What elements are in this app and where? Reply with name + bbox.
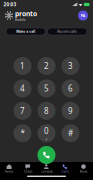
- staticText: #: [68, 128, 73, 139]
- button[interactable]: 6: [61, 79, 79, 97]
- staticText: 3: [68, 61, 73, 71]
- staticText: PA: [80, 13, 85, 18]
- staticText: 6: [68, 83, 73, 94]
- staticText: Contacts: [40, 169, 52, 173]
- staticText: 7: [20, 105, 25, 116]
- button[interactable]: 5: [37, 79, 55, 97]
- button[interactable]: *: [13, 124, 31, 142]
- button[interactable]: 9: [61, 102, 79, 120]
- button[interactable]: 7: [13, 102, 31, 120]
- button[interactable]: Contacts: [37, 163, 56, 174]
- staticText: *: [20, 128, 24, 139]
- staticText: 4: [20, 83, 25, 94]
- button[interactable]: Chats: [19, 163, 37, 174]
- button[interactable]: 3: [61, 57, 79, 75]
- button[interactable]: Make a call: [6, 28, 45, 35]
- staticText: 1: [20, 61, 25, 71]
- button[interactable]: #: [61, 124, 79, 142]
- staticText: Make a call: [16, 29, 35, 34]
- staticText: 8: [44, 105, 49, 116]
- button[interactable]: Home: [0, 163, 19, 174]
- button[interactable]: 4: [13, 79, 31, 97]
- staticText: Recent calls: [57, 29, 77, 34]
- staticText: 0: [44, 125, 49, 136]
- button[interactable]: More: [74, 163, 93, 174]
- staticText: pronto: [15, 9, 37, 18]
- staticText: 5: [44, 83, 49, 94]
- button[interactable]: Recent calls: [47, 28, 87, 35]
- staticText: 9: [68, 105, 73, 116]
- staticText: 2: [44, 61, 49, 71]
- staticText: +: [45, 136, 47, 141]
- button[interactable]: Call: [37, 146, 55, 164]
- button[interactable]: Profile: [78, 10, 88, 20]
- staticText: mobile: [15, 18, 26, 22]
- button[interactable]: Calls: [56, 163, 74, 174]
- staticText: 20:03: [3, 1, 16, 8]
- staticText: More: [80, 169, 88, 173]
- button[interactable]: 8: [37, 102, 55, 120]
- staticText: Calls: [62, 169, 69, 173]
- staticText: Home: [5, 169, 14, 173]
- staticText: Chats: [24, 169, 32, 173]
- button[interactable]: 0: [37, 124, 55, 142]
- button[interactable]: 1: [13, 57, 31, 75]
- button[interactable]: 2: [37, 57, 55, 75]
